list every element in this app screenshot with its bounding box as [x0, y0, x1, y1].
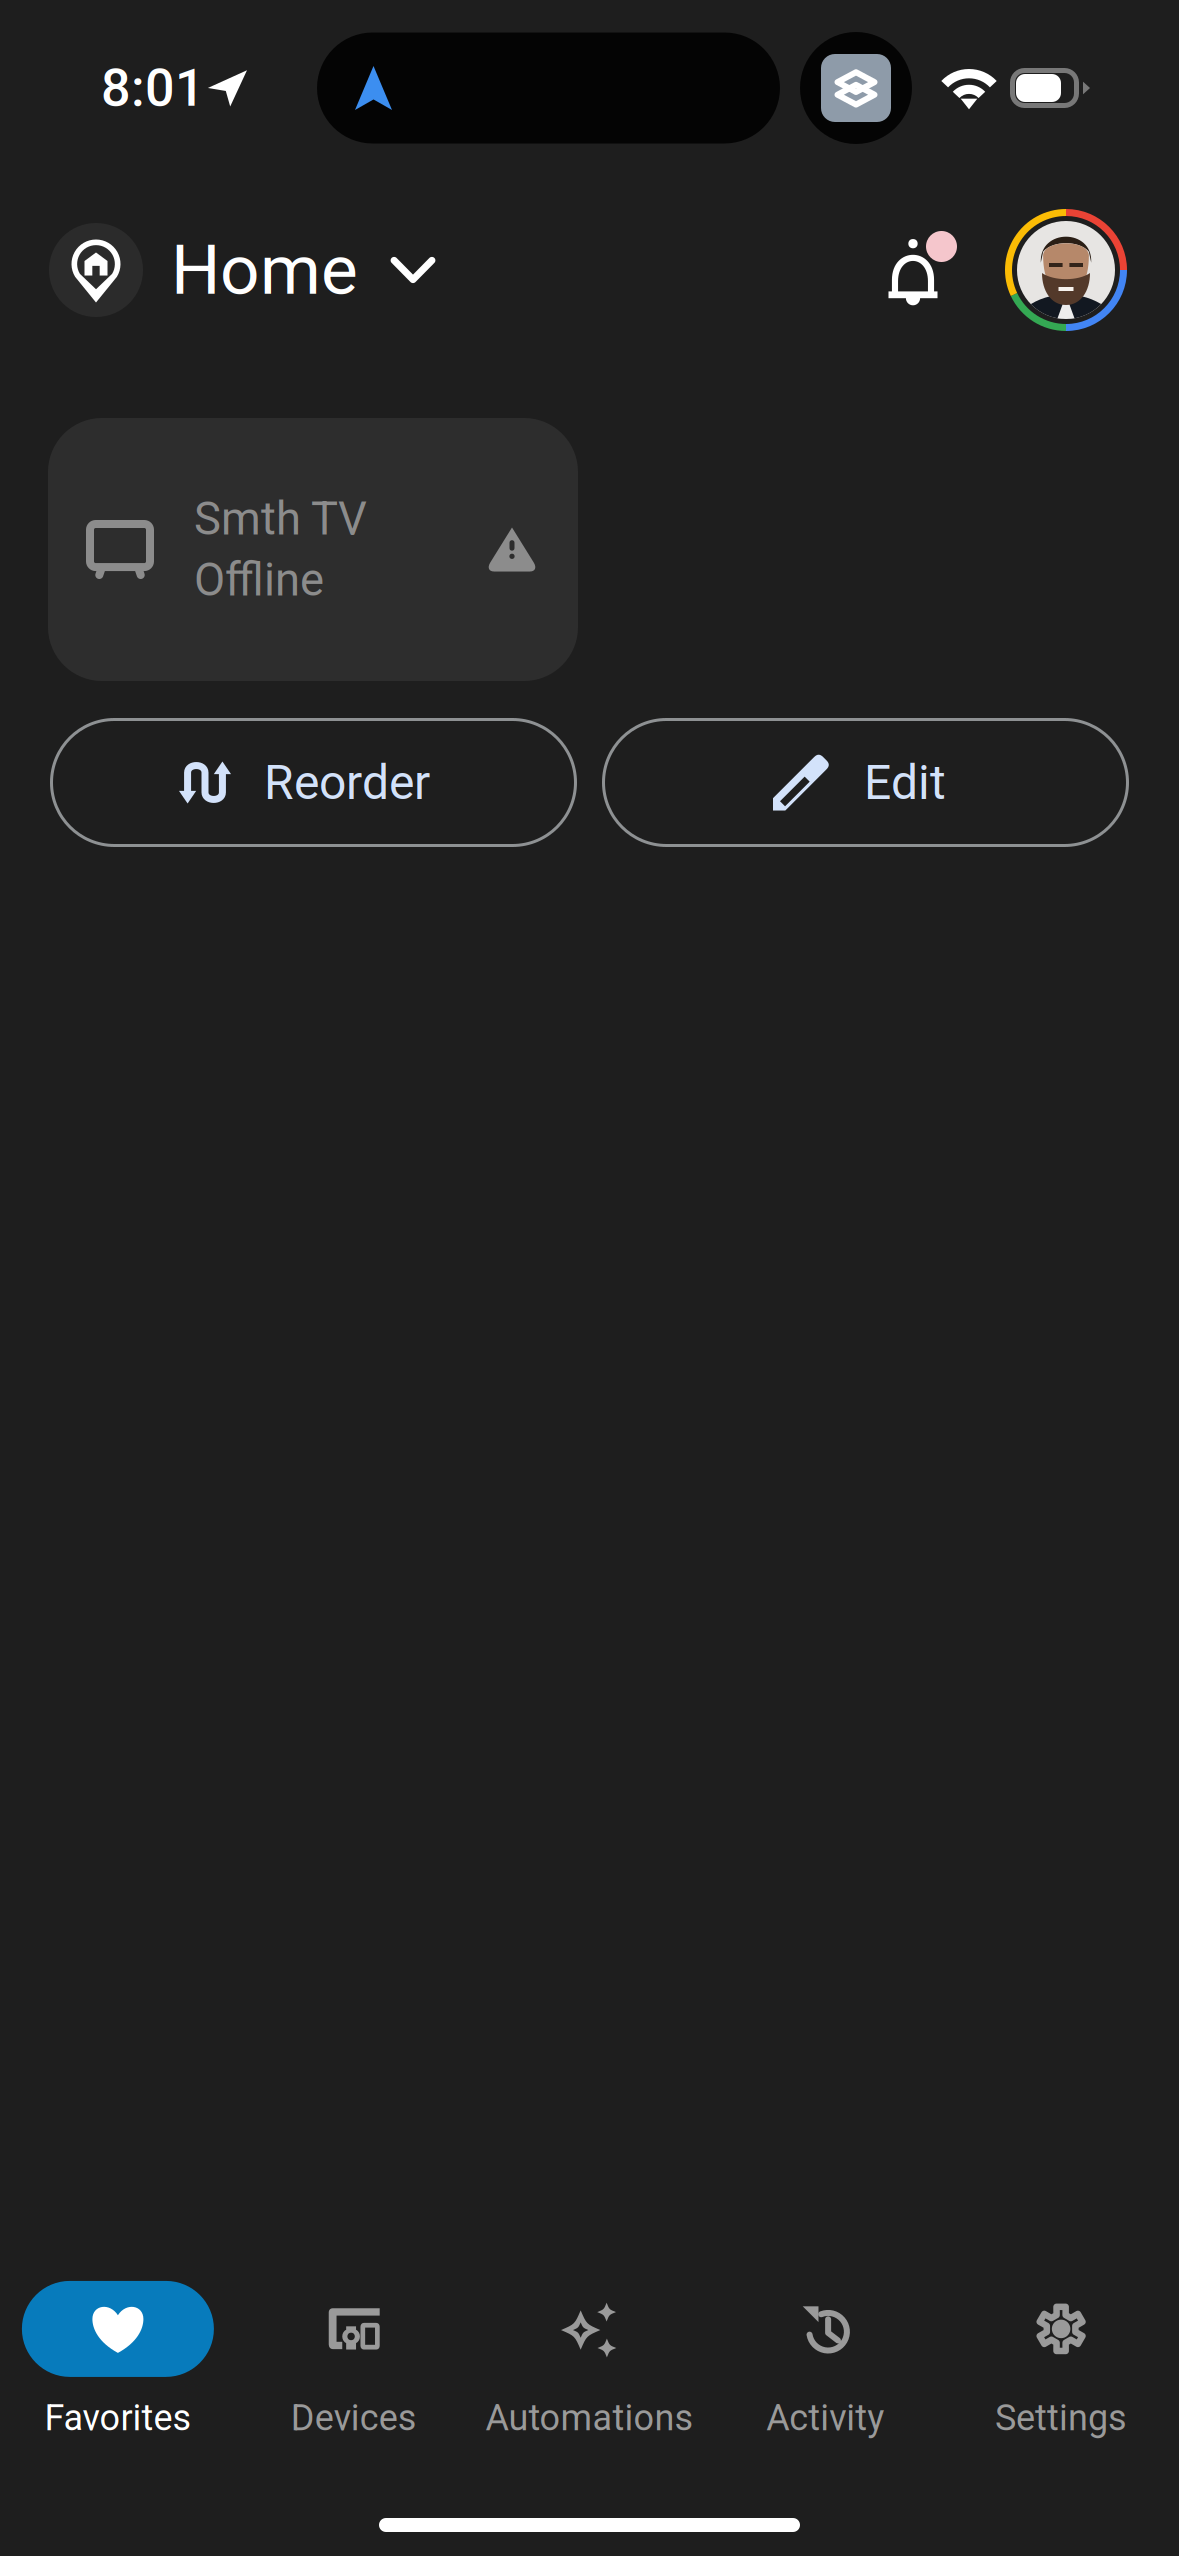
staticText: Automations: [485, 2397, 693, 2439]
staticText: Reorder: [264, 754, 430, 811]
staticText: Devices: [291, 2397, 417, 2439]
button[interactable]: Notifications: [860, 220, 966, 320]
button[interactable]: Activity: [707, 2281, 943, 2439]
staticText: Settings: [995, 2397, 1127, 2439]
staticText: Edit: [864, 754, 946, 811]
button[interactable]: Account: [1002, 206, 1130, 334]
button[interactable]: Automations: [472, 2281, 707, 2439]
button[interactable]: Smth TV: [48, 418, 578, 681]
staticText: Activity: [766, 2397, 884, 2439]
staticText: Home: [171, 229, 358, 311]
staticText: Favorites: [44, 2397, 191, 2439]
button[interactable]: Favorites: [0, 2281, 236, 2439]
staticText: Offline: [194, 553, 324, 607]
button[interactable]: Edit: [602, 718, 1129, 847]
staticText: 8:01: [101, 57, 205, 118]
staticText: Smth TV: [194, 492, 367, 545]
button[interactable]: Devices: [236, 2281, 472, 2439]
button[interactable]: Home: [49, 223, 434, 317]
button[interactable]: Settings: [943, 2281, 1179, 2439]
button[interactable]: Reorder: [50, 718, 577, 847]
